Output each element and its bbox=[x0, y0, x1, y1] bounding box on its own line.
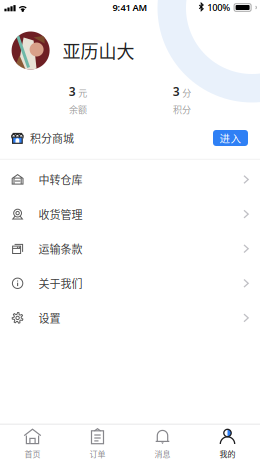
staticText: 分 bbox=[182, 86, 191, 99]
staticText: 中转仓库 bbox=[39, 171, 83, 187]
button[interactable]: 运输条款 bbox=[0, 231, 260, 266]
staticText: 收货管理 bbox=[39, 206, 83, 222]
staticText: 亚历山大 bbox=[63, 37, 135, 64]
button[interactable]: 首页 bbox=[0, 424, 65, 463]
button[interactable]: 收货管理 bbox=[0, 197, 260, 231]
staticText: 关于我们 bbox=[39, 275, 83, 291]
button[interactable]: 积分商城 bbox=[0, 120, 260, 156]
button[interactable]: 设置 bbox=[0, 301, 260, 335]
staticText: 余额 bbox=[69, 103, 87, 116]
button[interactable]: 我的 bbox=[195, 424, 260, 463]
staticText: 3 bbox=[69, 83, 76, 99]
button[interactable]: 消息 bbox=[130, 424, 195, 463]
staticText: 9:41 AM bbox=[112, 1, 147, 14]
staticText: 3 bbox=[173, 83, 180, 99]
staticText: 设置 bbox=[39, 310, 61, 326]
staticText: 进入 bbox=[219, 130, 241, 146]
staticText: 积分商城 bbox=[30, 130, 74, 146]
button[interactable]: 中转仓库 bbox=[0, 162, 260, 197]
staticText: 100% bbox=[207, 1, 230, 14]
staticText: 运输条款 bbox=[39, 241, 83, 257]
button[interactable]: 关于我们 bbox=[0, 266, 260, 301]
button[interactable]: 订单 bbox=[65, 424, 130, 463]
staticText: 消息 bbox=[154, 448, 170, 460]
staticText: 我的 bbox=[219, 448, 235, 460]
staticText: 订单 bbox=[89, 448, 105, 460]
staticText: 积分 bbox=[173, 103, 191, 116]
staticText: 元 bbox=[78, 86, 87, 99]
staticText: 首页 bbox=[24, 448, 40, 460]
